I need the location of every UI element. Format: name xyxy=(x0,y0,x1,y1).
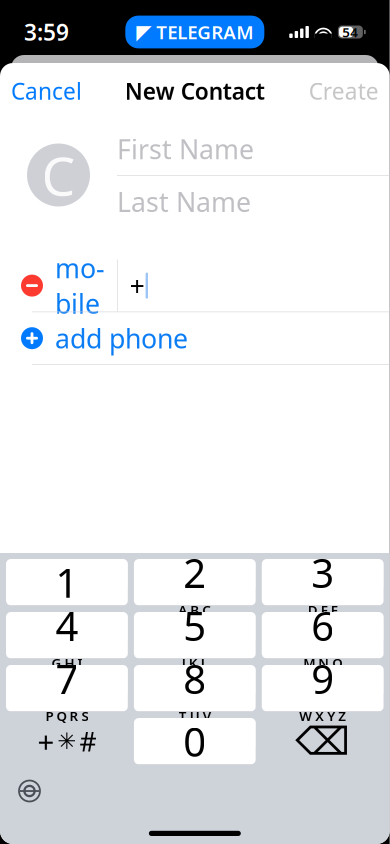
button[interactable]: Create xyxy=(305,68,383,114)
button[interactable]: 1 xyxy=(6,559,128,605)
button[interactable]: 5 J K L xyxy=(134,612,256,658)
staticText: 6 xyxy=(311,599,334,652)
button[interactable]: Cancel xyxy=(7,68,86,114)
staticText: M N O xyxy=(303,654,342,672)
button[interactable]: First Name xyxy=(117,123,390,175)
staticText: # xyxy=(79,723,96,759)
staticText: 4 xyxy=(55,599,78,652)
staticText: Last Name xyxy=(117,184,251,219)
staticText: D E F xyxy=(308,601,338,619)
staticText: 2 xyxy=(183,546,206,599)
button[interactable]: 9 W X Y Z xyxy=(262,665,384,711)
button[interactable]: Remove mobile phone xyxy=(0,260,117,312)
staticText: First Name xyxy=(117,131,254,167)
staticText: mobile xyxy=(55,250,105,321)
staticText: 5 xyxy=(183,599,206,652)
button[interactable]: 2 A B C xyxy=(134,559,256,605)
staticText: Cancel xyxy=(11,76,82,106)
staticText: add phone xyxy=(55,320,188,356)
button[interactable]: Next keyboard xyxy=(11,772,48,809)
button[interactable]: 3 D E F xyxy=(262,559,384,605)
staticText: T U V xyxy=(179,707,211,725)
staticText: A B C xyxy=(178,601,211,619)
staticText: 1 xyxy=(55,556,78,609)
staticText: 3:59 xyxy=(24,17,69,47)
staticText: + xyxy=(37,722,54,761)
staticText: + xyxy=(130,268,145,303)
button[interactable]: 0 xyxy=(134,718,256,764)
button[interactable]: Delete xyxy=(262,718,384,764)
button[interactable]: 4 G H I xyxy=(6,612,128,658)
staticText: C xyxy=(41,140,75,210)
staticText: 54 xyxy=(342,23,358,41)
staticText: New Contact xyxy=(125,76,265,106)
staticText: 9 xyxy=(311,652,334,705)
staticText: TELEGRAM xyxy=(156,20,253,44)
button[interactable]: + xyxy=(118,260,390,312)
staticText: ◤ xyxy=(136,21,151,43)
staticText: 7 xyxy=(55,652,78,705)
button[interactable]: 6 M N O xyxy=(262,612,384,658)
staticText: ✳ xyxy=(57,728,76,754)
button[interactable]: 7 P Q R S xyxy=(6,665,128,711)
staticText: P Q R S xyxy=(45,707,88,725)
staticText: G H I xyxy=(51,654,82,672)
button[interactable]: Plus, star, pound xyxy=(6,718,128,764)
staticText: W X Y Z xyxy=(299,707,346,725)
button[interactable]: add phone xyxy=(0,312,390,364)
staticText: ⌫ xyxy=(295,719,350,763)
staticText: J K L xyxy=(182,654,208,672)
staticText: 8 xyxy=(183,652,206,705)
staticText: 3 xyxy=(311,546,334,599)
button[interactable]: Last Name xyxy=(117,176,390,228)
button[interactable]: 8 T U V xyxy=(134,665,256,711)
staticText: 0 xyxy=(183,715,206,768)
staticText: Create xyxy=(309,76,379,106)
